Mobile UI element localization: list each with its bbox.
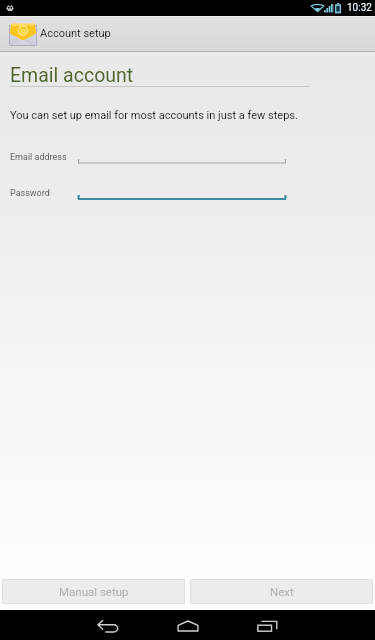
button[interactable]: Next — [190, 579, 373, 604]
staticText: Manual setup — [59, 585, 129, 598]
button[interactable]: Recent apps — [251, 610, 285, 640]
staticText: You can set up email for most accounts i… — [10, 109, 298, 122]
staticText: Account setup — [40, 27, 111, 40]
button[interactable]: Password — [0, 184, 375, 204]
staticText: 10:32 — [347, 2, 372, 14]
button[interactable]: Home — [171, 610, 205, 640]
button[interactable]: Account setup — [0, 16, 375, 51]
button[interactable]: Email address — [0, 148, 375, 168]
staticText: Email address — [10, 152, 67, 163]
staticText: Password — [10, 188, 50, 199]
staticText: Email account — [10, 64, 134, 87]
button[interactable]: Manual setup — [2, 579, 185, 604]
staticText: Next — [270, 585, 294, 598]
button[interactable]: Back — [91, 610, 125, 640]
